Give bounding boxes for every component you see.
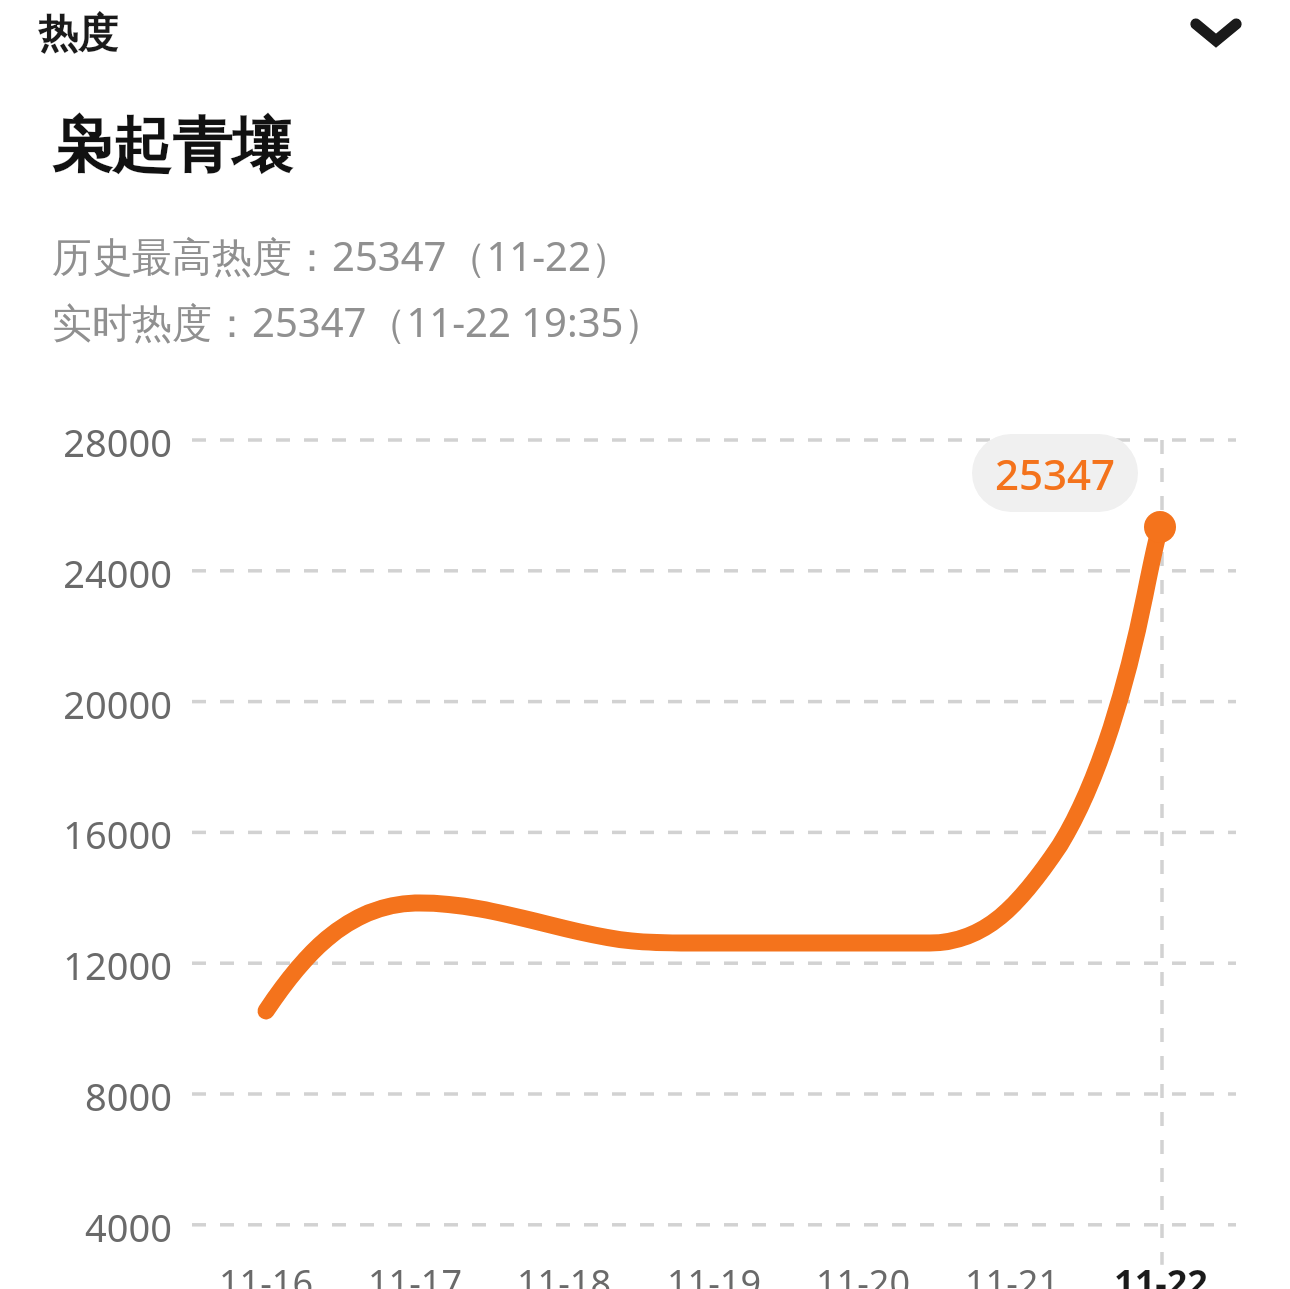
staticText: 25347 (995, 445, 1116, 502)
staticText: 11-18 (517, 1258, 611, 1289)
staticText: 4000 (85, 1201, 172, 1249)
staticText: 实时热度：25347（11-22 19:35） (52, 294, 664, 349)
button[interactable]: Collapse (1178, 0, 1254, 64)
staticText: 枭起青壤 (52, 108, 292, 184)
staticText: 8000 (85, 1070, 172, 1118)
staticText: 11-17 (368, 1258, 462, 1289)
staticText: 热度 (38, 8, 118, 58)
button[interactable]: 热度 (38, 8, 118, 58)
staticText: 20000 (63, 678, 172, 726)
staticText: 12000 (63, 939, 172, 987)
staticText: 28000 (63, 416, 172, 464)
staticText: 历史最高热度：25347（11-22） (52, 228, 631, 283)
staticText: 11-21 (965, 1258, 1059, 1289)
staticText: 24000 (63, 547, 172, 595)
button[interactable]: 25347 (972, 434, 1138, 512)
staticText: 11-20 (816, 1258, 910, 1289)
staticText: 11-19 (667, 1258, 761, 1289)
staticText: 16000 (63, 808, 172, 856)
staticText: 11-16 (219, 1258, 313, 1289)
staticText: 11-22 (1114, 1258, 1208, 1289)
